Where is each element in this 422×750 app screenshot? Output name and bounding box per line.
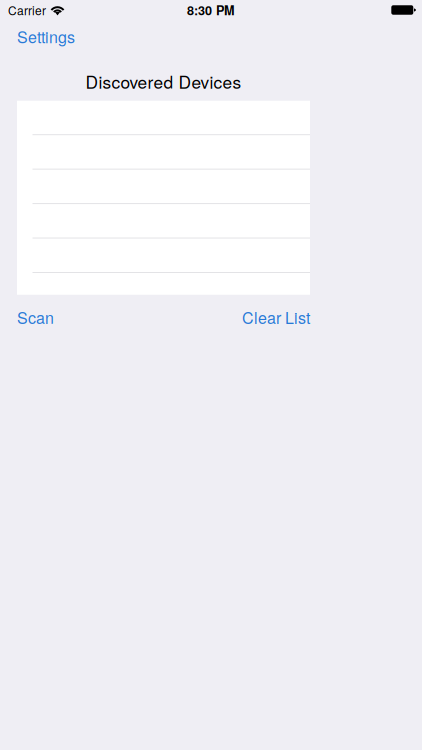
staticText: Scan [17,306,54,329]
staticText: 8:30 PM [187,1,235,19]
button[interactable]: Scan [17,300,64,333]
staticText: Discovered Devices [85,69,241,94]
button[interactable]: Settings [17,20,85,52]
staticText: Clear List [242,306,310,329]
staticText: Carrier [8,1,46,19]
button[interactable]: Clear List [232,300,310,333]
staticText: Settings [17,25,75,48]
